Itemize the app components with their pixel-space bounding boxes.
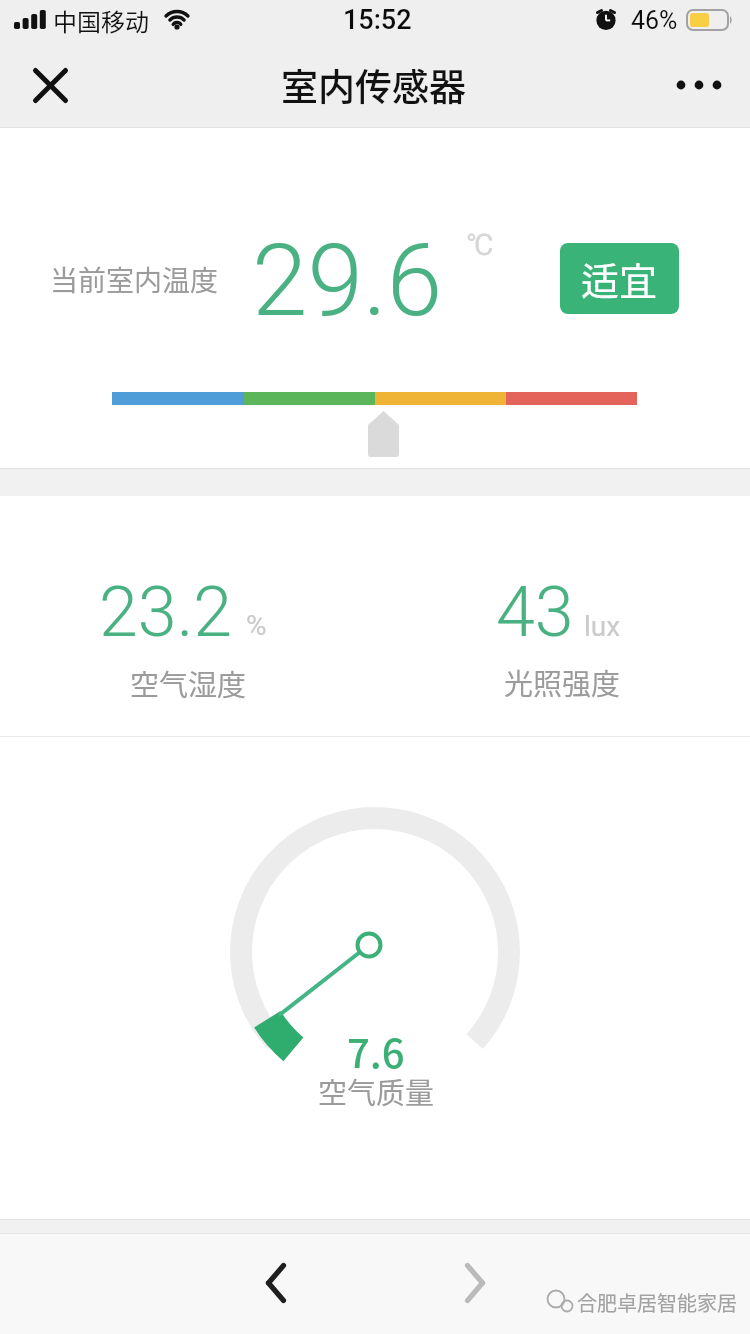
- staticText: ℃: [467, 227, 494, 262]
- button[interactable]: [667, 55, 731, 115]
- staticText: 光照强度: [504, 661, 621, 703]
- staticText: 中国移动: [53, 3, 149, 38]
- staticText: 适宜: [581, 251, 658, 306]
- staticText: 空气湿度: [130, 662, 247, 704]
- button[interactable]: 适宜: [560, 243, 679, 314]
- staticText: lux: [584, 610, 621, 643]
- staticText: %: [246, 609, 267, 642]
- staticText: 15:52: [343, 4, 412, 36]
- staticText: 室内传感器: [281, 58, 466, 112]
- staticText: 当前室内温度: [50, 259, 219, 300]
- staticText: 29.6: [252, 222, 443, 339]
- button[interactable]: [435, 1243, 515, 1323]
- staticText: 空气质量: [318, 1070, 435, 1112]
- staticText: 合肥卓居智能家居: [577, 1288, 737, 1317]
- button[interactable]: [236, 1243, 316, 1323]
- button[interactable]: [18, 53, 82, 117]
- staticText: 46%: [631, 6, 678, 35]
- staticText: 23.2: [99, 571, 233, 653]
- staticText: 43: [496, 571, 574, 653]
- staticText: 7.6: [347, 1022, 405, 1080]
